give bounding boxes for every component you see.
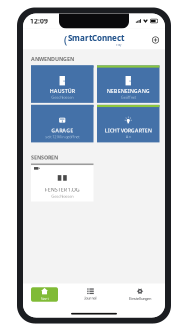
staticText: GARAGE xyxy=(51,127,73,134)
button[interactable]: LICHT VORGARTEN xyxy=(97,105,159,142)
staticText: SENSOREN xyxy=(31,154,58,161)
staticText: Geöffnet xyxy=(121,95,136,100)
staticText: ANWENDUNGEN xyxy=(31,55,74,63)
button[interactable]: HAUSTÜR xyxy=(31,65,93,103)
staticText: SmartConnect xyxy=(68,33,124,43)
staticText: Einstellungen xyxy=(129,296,151,301)
staticText: An xyxy=(126,134,131,139)
button[interactable]: Journal xyxy=(75,287,105,302)
staticText: LICHT VORGARTEN xyxy=(105,127,152,134)
staticText: HAUSTÜR xyxy=(50,87,75,94)
staticText: 12:09 xyxy=(30,17,48,25)
staticText: seit 12 Min geöffnet xyxy=(45,134,79,139)
button[interactable]: Add device xyxy=(152,36,159,43)
staticText: Start xyxy=(40,296,48,301)
staticText: easy xyxy=(116,43,121,47)
button[interactable]: FENSTER 1.OG xyxy=(31,163,93,201)
button[interactable]: Einstellungen xyxy=(123,287,157,302)
staticText: FENSTER 1.OG xyxy=(45,186,80,193)
staticText: Geschlossen xyxy=(51,194,73,199)
button[interactable]: NEBENEINGANG xyxy=(97,65,159,103)
button[interactable]: GARAGE xyxy=(31,105,93,142)
staticText: ( xyxy=(64,33,67,47)
staticText: NEBENEINGANG xyxy=(107,87,150,94)
staticText: Geschlossen xyxy=(51,95,73,100)
button[interactable]: Start xyxy=(31,287,58,302)
staticText: Journal xyxy=(84,295,96,300)
